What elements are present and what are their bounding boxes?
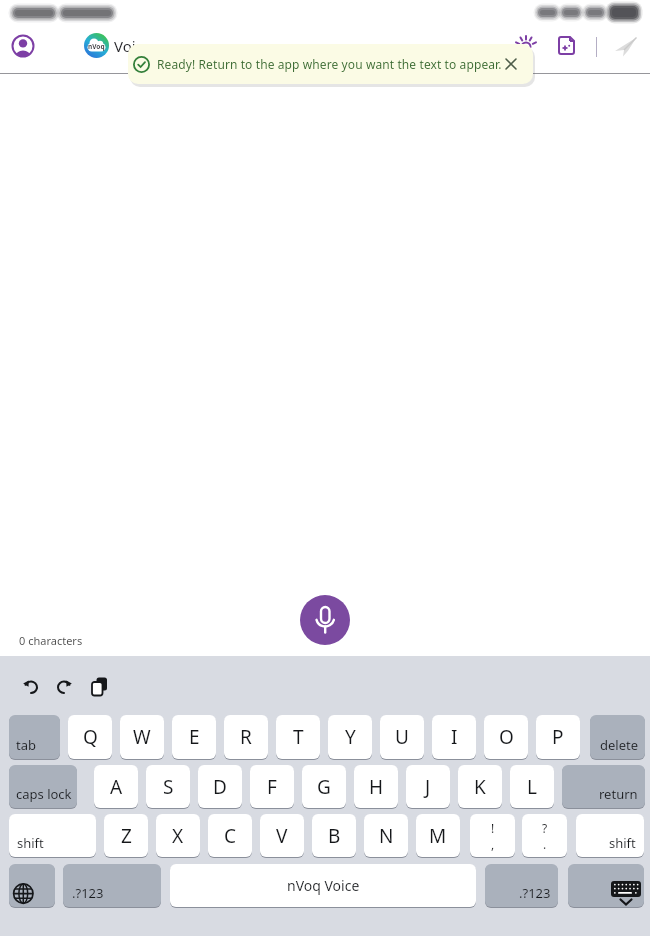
staticText: I (451, 724, 458, 750)
staticText: F (267, 774, 277, 800)
button[interactable]: H (354, 765, 398, 808)
button[interactable]: D (198, 765, 242, 808)
staticText: W (133, 724, 151, 750)
button[interactable]: G (302, 765, 346, 808)
staticText: , (491, 836, 495, 852)
button[interactable]: U (380, 715, 424, 759)
button[interactable]: nVoq (84, 33, 109, 58)
staticText: nVoq (88, 42, 105, 51)
button[interactable]: I (432, 715, 476, 759)
staticText: . (543, 836, 547, 852)
staticText: H (369, 774, 384, 800)
staticText: return (599, 785, 638, 803)
button[interactable] (9, 864, 55, 907)
staticText: U (395, 724, 409, 750)
staticText: D (213, 774, 227, 800)
button[interactable]: X (156, 814, 200, 857)
button[interactable]: E (172, 715, 216, 759)
button[interactable]: A (94, 765, 138, 808)
button[interactable]: delete (590, 715, 645, 759)
staticText: A (110, 774, 123, 800)
staticText: delete (600, 736, 639, 754)
staticText: caps lock (16, 785, 72, 803)
button[interactable]: shift (576, 814, 644, 857)
button[interactable]: N (364, 814, 408, 857)
button[interactable] (568, 864, 644, 907)
staticText: M (429, 823, 447, 849)
button[interactable]: ? (522, 814, 567, 857)
staticText: E (189, 724, 200, 750)
staticText: shift (609, 834, 636, 852)
staticText: G (317, 774, 331, 800)
staticText: O (499, 724, 514, 750)
staticText: K (474, 774, 486, 800)
button[interactable]: C (208, 814, 252, 857)
staticText: ! (491, 820, 495, 836)
button[interactable] (300, 595, 350, 645)
button[interactable]: M (416, 814, 460, 857)
staticText: N (379, 823, 394, 849)
button[interactable] (499, 52, 523, 76)
button[interactable]: .?123 (485, 864, 558, 907)
button[interactable]: tab (9, 715, 60, 759)
button[interactable]: B (312, 814, 356, 857)
button[interactable]: R (224, 715, 268, 759)
staticText: B (328, 823, 341, 849)
button[interactable]: Y (328, 715, 372, 759)
staticText: R (240, 724, 252, 750)
button[interactable] (555, 35, 578, 58)
button[interactable]: shift (9, 814, 96, 857)
button[interactable]: return (562, 765, 645, 808)
staticText: shift (17, 834, 44, 852)
staticText: tab (16, 736, 36, 754)
button[interactable]: nVoq Voice (170, 864, 476, 907)
button[interactable]: V (260, 814, 304, 857)
staticText: P (552, 724, 564, 750)
staticText: S (163, 774, 174, 800)
button[interactable] (20, 676, 42, 698)
button[interactable]: ! (470, 814, 515, 857)
button[interactable]: Q (68, 715, 112, 759)
staticText: .?123 (72, 884, 104, 902)
button[interactable] (11, 34, 35, 58)
staticText: Ready! Return to the app where you want … (157, 56, 502, 72)
button[interactable]: T (276, 715, 320, 759)
staticText: C (224, 823, 237, 849)
staticText: Voice (114, 36, 152, 56)
staticText: .?123 (519, 884, 551, 902)
button[interactable]: K (458, 765, 502, 808)
staticText: ? (542, 820, 548, 836)
staticText: L (527, 774, 537, 800)
button[interactable]: J (406, 765, 450, 808)
button[interactable]: P (536, 715, 580, 759)
staticText: J (425, 774, 431, 800)
staticText: Y (345, 724, 356, 750)
staticText: V (276, 823, 288, 849)
button[interactable]: caps lock (9, 765, 77, 808)
button[interactable] (53, 676, 75, 698)
staticText: X (172, 823, 184, 849)
button[interactable]: L (510, 765, 554, 808)
button[interactable]: O (484, 715, 528, 759)
button[interactable]: W (120, 715, 164, 759)
staticText: Z (121, 823, 132, 849)
button[interactable] (88, 676, 110, 698)
staticText: nVoq Voice (287, 876, 360, 895)
button[interactable]: .?123 (63, 864, 161, 907)
staticText: Q (83, 724, 98, 750)
staticText: 0 characters (19, 633, 83, 648)
staticText: T (293, 724, 304, 750)
button[interactable]: Z (104, 814, 148, 857)
button[interactable]: F (250, 765, 294, 808)
button[interactable]: S (146, 765, 190, 808)
button[interactable] (611, 34, 639, 62)
button[interactable] (512, 30, 540, 58)
